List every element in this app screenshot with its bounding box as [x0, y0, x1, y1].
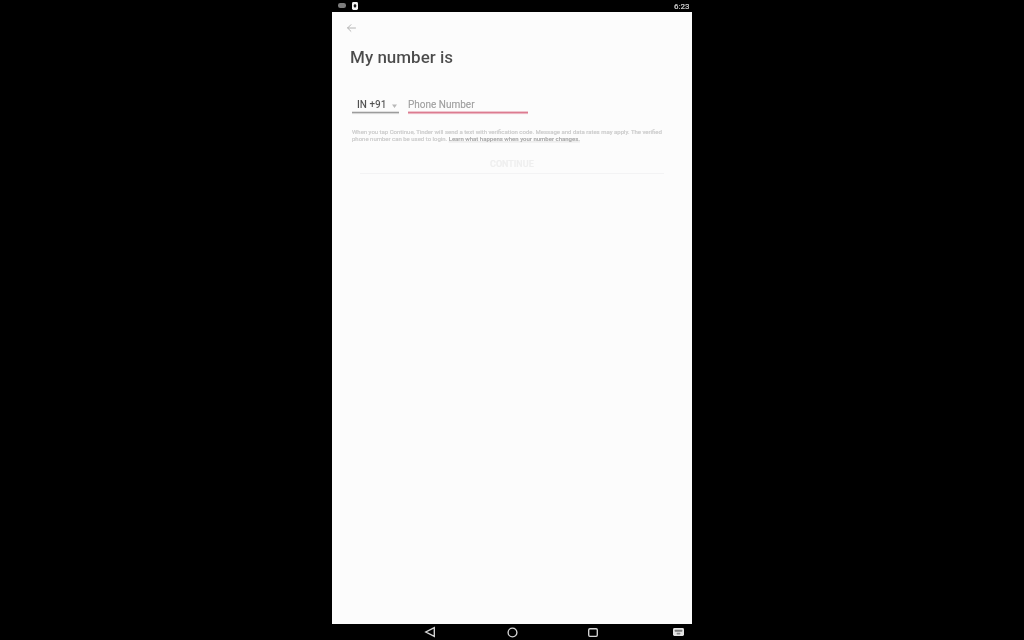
staticText: 6:23	[674, 2, 690, 11]
button[interactable]: Keyboard	[662, 624, 696, 640]
button[interactable]: IN +91	[352, 96, 399, 113]
staticText: Phone Number	[408, 99, 475, 111]
staticText: IN +91	[357, 99, 387, 111]
staticText: CONTINUE	[490, 159, 534, 170]
button[interactable]: Back	[341, 17, 362, 38]
button[interactable]: Home	[495, 624, 529, 640]
button[interactable]: Back	[414, 624, 448, 640]
staticText: When you tap Continue, Tinder will send …	[352, 128, 664, 143]
staticText: My number is	[350, 47, 454, 67]
button[interactable]: Recent apps	[576, 624, 610, 640]
button[interactable]: Phone Number	[408, 96, 528, 113]
